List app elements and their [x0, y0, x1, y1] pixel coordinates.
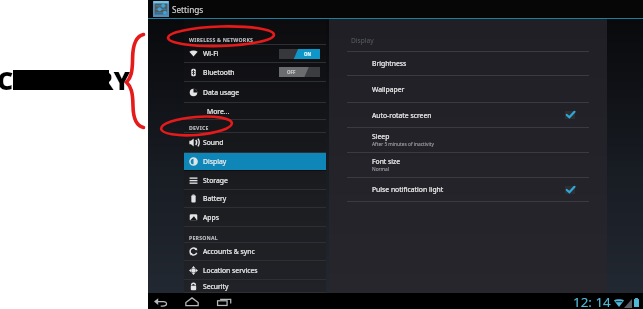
button[interactable]: Checked [565, 186, 575, 194]
button[interactable]: OFF [279, 67, 320, 77]
button[interactable]: ON [279, 49, 320, 59]
button[interactable]: Sound [184, 133, 326, 152]
staticText: CATEGORY [0, 63, 131, 97]
button[interactable]: Pulse notification light [329, 177, 607, 201]
button[interactable]: Brightness [329, 51, 607, 75]
staticText: Display [203, 157, 227, 166]
button[interactable]: Accounts & sync [184, 243, 326, 260]
button[interactable]: Display [184, 153, 326, 170]
button[interactable]: Sleep [329, 127, 607, 152]
staticText: Storage [203, 176, 228, 185]
button[interactable]: Storage [184, 171, 326, 189]
button[interactable]: Bluetooth [184, 63, 326, 81]
staticText: Battery [203, 194, 227, 203]
button[interactable]: Home [185, 297, 199, 306]
staticText: WIRELESS & NETWORKS [189, 36, 254, 43]
staticText: After 5 minutes of inactivity [372, 141, 434, 148]
button[interactable]: Back [154, 297, 168, 306]
staticText: Apps [203, 213, 219, 222]
staticText: Normal [372, 166, 389, 173]
button[interactable]: Location services [184, 261, 326, 279]
button[interactable]: Security [184, 280, 326, 292]
staticText: Wallpaper [372, 85, 405, 94]
button[interactable]: Checked [565, 111, 575, 119]
staticText: Wi-Fi [203, 49, 219, 58]
staticText: More... [207, 107, 230, 116]
button[interactable]: More... [184, 103, 326, 119]
staticText: Sound [203, 138, 224, 147]
staticText: 12: 14 [573, 293, 611, 309]
staticText: OFF [287, 69, 296, 75]
staticText: Location services [203, 266, 258, 275]
staticText: Auto-rotate screen [372, 111, 432, 120]
button[interactable]: Battery [184, 190, 326, 207]
staticText: Brightness [372, 59, 407, 68]
staticText: PERSONAL [189, 234, 218, 241]
button[interactable]: Settings app icon [152, 1, 170, 17]
button[interactable]: Data usage [184, 82, 326, 102]
button[interactable]: Apps [184, 208, 326, 226]
staticText: Display [351, 36, 374, 45]
staticText: Font size [372, 157, 401, 166]
staticText: Settings [172, 4, 204, 15]
staticText: ON [304, 51, 312, 57]
staticText: Pulse notification light [372, 185, 444, 194]
staticText: Sleep [372, 132, 390, 141]
staticText: Security [203, 282, 229, 291]
button[interactable]: Auto-rotate screen [329, 102, 607, 127]
button[interactable]: Font size [329, 152, 607, 177]
staticText: Data usage [203, 88, 240, 97]
button[interactable]: Wallpaper [329, 75, 607, 102]
staticText: Accounts & sync [203, 247, 255, 256]
staticText: DEVICE [189, 124, 209, 131]
button[interactable]: Recent apps [217, 297, 231, 306]
button[interactable]: Wi-Fi [184, 45, 326, 62]
staticText: Bluetooth [203, 68, 235, 77]
